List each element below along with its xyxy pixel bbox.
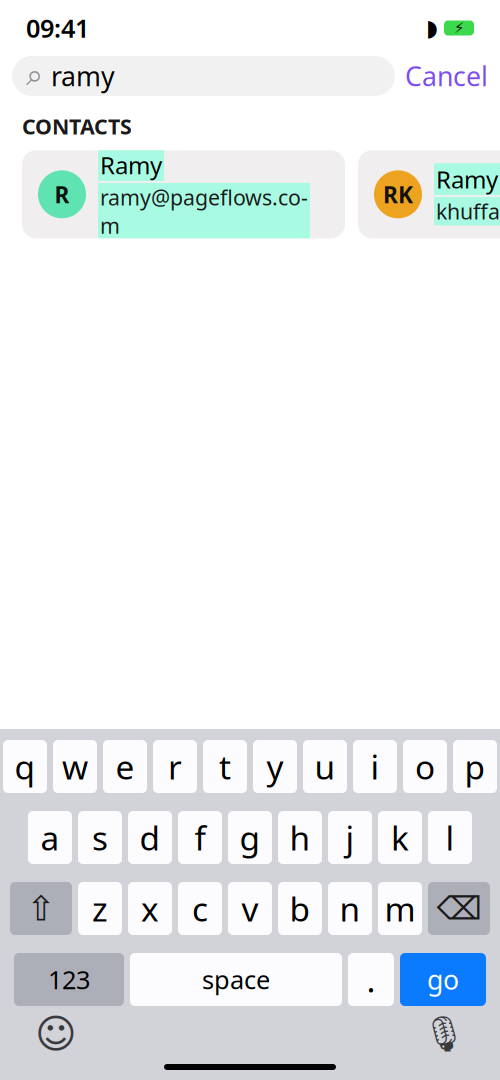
staticText: a (40, 815, 59, 860)
staticText: R (54, 179, 69, 209)
staticText: . (366, 957, 375, 1002)
button[interactable]: i (353, 740, 397, 793)
staticText: d (139, 815, 160, 860)
staticText: 09:41 (26, 11, 89, 45)
button[interactable]: ⌕ (12, 56, 395, 96)
button[interactable]: r (153, 740, 197, 793)
staticText: f (194, 815, 205, 860)
button[interactable]: Cancel (405, 58, 488, 94)
staticText: Cancel (405, 58, 488, 94)
button[interactable]: Delete (428, 882, 490, 935)
button[interactable]: m (378, 882, 422, 935)
button[interactable]: c (178, 882, 222, 935)
button[interactable]: Shift (10, 882, 72, 935)
button[interactable]: v (228, 882, 272, 935)
button[interactable]: p (453, 740, 497, 793)
button[interactable]: n (328, 882, 372, 935)
staticText: ⌕ (26, 61, 43, 91)
staticText: Ramy (436, 163, 498, 195)
button[interactable]: s (78, 811, 122, 864)
staticText: k (391, 815, 409, 860)
button[interactable]: x (128, 882, 172, 935)
staticText: ⇧ (26, 889, 55, 928)
staticText: Ramy (100, 149, 162, 181)
button[interactable]: 123 (14, 953, 124, 1006)
staticText: 123 (48, 963, 90, 996)
button[interactable]: f (178, 811, 222, 864)
button[interactable]: space (130, 953, 342, 1006)
staticText: khuffa (436, 197, 500, 225)
staticText: v (241, 886, 258, 931)
staticText: b (289, 886, 310, 931)
staticText: r (168, 744, 182, 789)
button[interactable]: d (128, 811, 172, 864)
button[interactable]: e (103, 740, 147, 793)
staticText: space (202, 963, 270, 996)
button[interactable]: l (428, 811, 472, 864)
button[interactable]: R (22, 150, 345, 238)
button[interactable]: RK (358, 150, 500, 238)
staticText: o (415, 744, 435, 789)
button[interactable]: y (253, 740, 297, 793)
staticText: u (314, 744, 335, 789)
staticText: c (192, 886, 208, 931)
button[interactable]: h (278, 811, 322, 864)
staticText: ramy@pageflows.com (100, 183, 308, 240)
staticText: CONTACTS (22, 112, 132, 140)
staticText: l (445, 815, 454, 860)
staticText: e (115, 744, 134, 789)
staticText: go (427, 962, 459, 997)
button[interactable]: w (53, 740, 97, 793)
button[interactable]: k (378, 811, 422, 864)
staticText: ramy (51, 58, 115, 94)
staticText: w (62, 744, 88, 789)
button[interactable]: q (3, 740, 47, 793)
staticText: RK (383, 179, 413, 209)
button[interactable]: o (403, 740, 447, 793)
button[interactable]: Emoji (32, 1010, 80, 1058)
button[interactable]: go (400, 953, 486, 1006)
staticText: q (14, 744, 35, 789)
staticText: x (141, 886, 159, 931)
staticText: i (370, 744, 379, 789)
staticText: z (92, 886, 108, 931)
button[interactable]: a (28, 811, 72, 864)
button[interactable]: g (228, 811, 272, 864)
staticText: p (464, 744, 485, 789)
staticText: m (384, 886, 415, 931)
staticText: 🎙 (422, 1014, 466, 1054)
button[interactable]: t (203, 740, 247, 793)
staticText: h (289, 815, 310, 860)
staticText: ◗ (426, 15, 438, 41)
staticText: ☺ (35, 1011, 77, 1057)
button[interactable]: . (348, 953, 394, 1006)
button[interactable]: j (328, 811, 372, 864)
button[interactable]: Dictation (420, 1010, 468, 1058)
staticText: g (239, 815, 260, 860)
staticText: y (266, 744, 283, 789)
button[interactable]: z (78, 882, 122, 935)
staticText: ⌫ (436, 890, 481, 927)
staticText: j (345, 815, 354, 860)
staticText: ⚡︎ (454, 20, 464, 36)
staticText: n (339, 886, 360, 931)
button[interactable]: u (303, 740, 347, 793)
button[interactable]: b (278, 882, 322, 935)
staticText: t (219, 744, 231, 789)
staticText: s (92, 815, 108, 860)
